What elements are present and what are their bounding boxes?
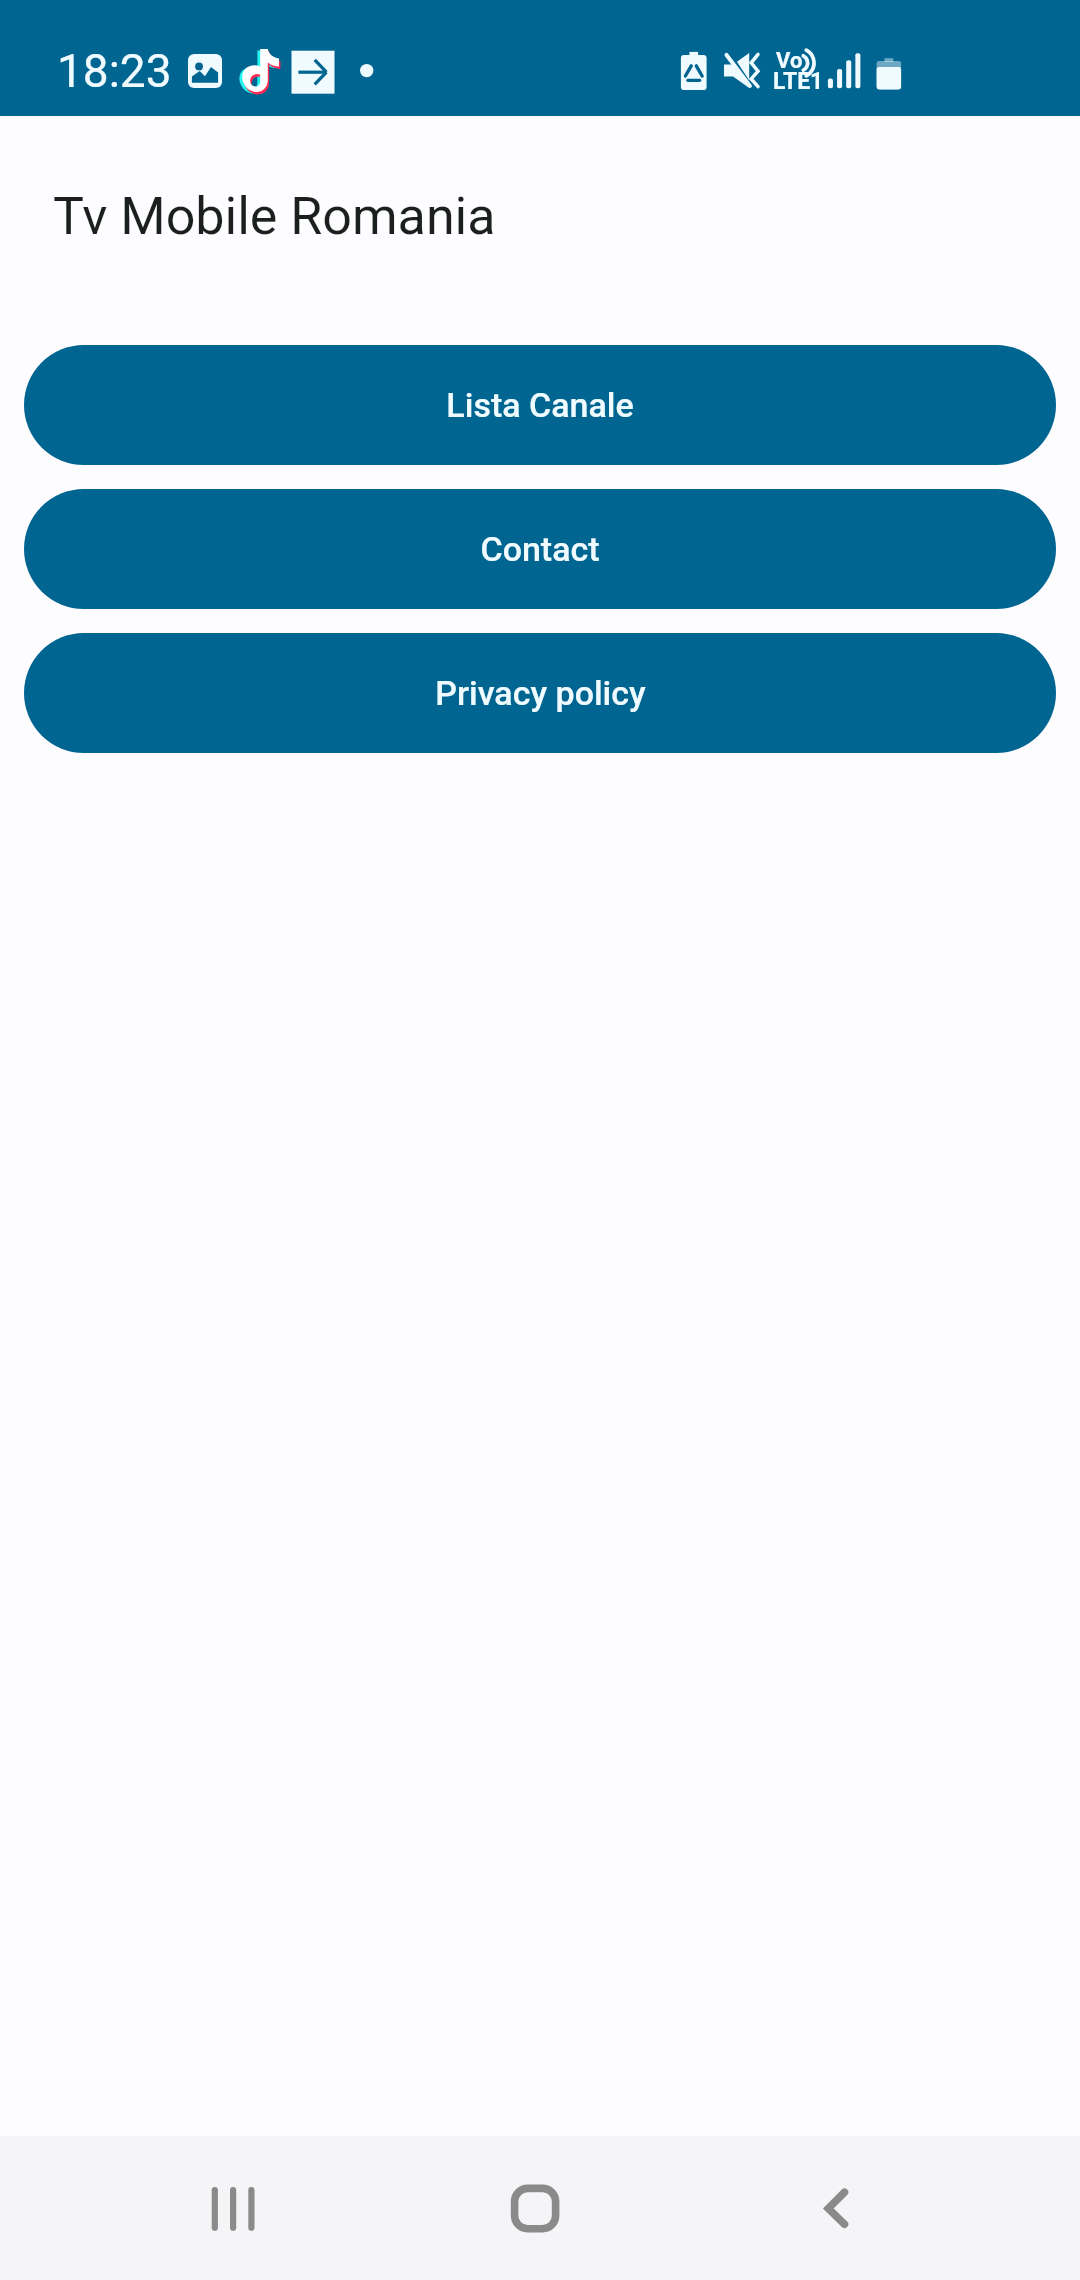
button[interactable]: Lista Canale <box>24 345 1056 465</box>
staticText: Privacy policy <box>435 673 646 713</box>
staticText: Lista Canale <box>446 385 634 425</box>
staticText: Contact <box>480 529 600 569</box>
button[interactable]: Back <box>776 2148 896 2268</box>
button[interactable]: Recent apps <box>173 2148 293 2268</box>
staticText: Vo <box>776 48 803 74</box>
button[interactable]: Home <box>475 2148 595 2268</box>
button[interactable]: Privacy policy <box>24 633 1056 753</box>
staticText: LTE1 <box>773 68 824 95</box>
staticText: Tv Mobile Romania <box>53 186 496 247</box>
staticText: 18:23 <box>57 44 172 98</box>
button[interactable]: Contact <box>24 489 1056 609</box>
